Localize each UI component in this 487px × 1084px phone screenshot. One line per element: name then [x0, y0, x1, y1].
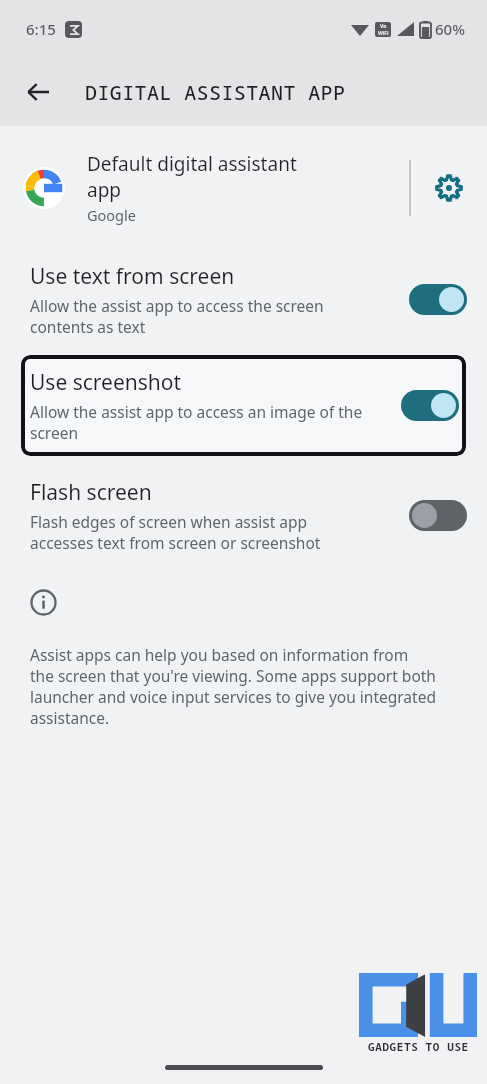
button[interactable]: Flash screen	[0, 474, 487, 557]
staticText: Allow the assist app to access the scree…	[30, 295, 324, 316]
button[interactable]	[401, 390, 459, 421]
staticText: accesses text from screen or screenshot	[30, 532, 321, 553]
staticText: the screen that you're viewing. Some app…	[30, 665, 436, 686]
staticText: GADGETS TO USE	[368, 1039, 469, 1054]
staticText: 60%	[435, 19, 465, 39]
staticText: app	[87, 177, 122, 203]
button[interactable]: Settings	[425, 164, 473, 212]
button[interactable]	[409, 500, 467, 531]
staticText: Google	[87, 205, 136, 225]
button[interactable]: Back	[16, 70, 60, 114]
staticText: Flash screen	[30, 478, 152, 507]
button[interactable]: Use text from screen	[0, 258, 487, 341]
staticText: WiFi	[378, 30, 389, 37]
staticText: screen	[30, 422, 79, 443]
staticText: Assist apps can help you based on inform…	[30, 644, 409, 665]
staticText: Use text from screen	[30, 262, 235, 291]
staticText: contents as text	[30, 316, 146, 337]
staticText: Allow the assist app to access an image …	[30, 401, 363, 422]
button[interactable]	[409, 284, 467, 315]
button[interactable]: Use screenshot	[21, 355, 466, 456]
staticText: Use screenshot	[30, 368, 182, 397]
staticText: Vo	[380, 23, 387, 30]
staticText: DIGITAL ASSISTANT APP	[85, 79, 346, 106]
staticText: launcher and voice input services to giv…	[30, 686, 436, 707]
button[interactable]: Default digital assistant	[0, 140, 487, 236]
staticText: Flash edges of screen when assist app	[30, 511, 308, 532]
staticText: assistance.	[30, 707, 110, 728]
staticText: Default digital assistant	[87, 151, 297, 177]
staticText: 6:15	[26, 19, 56, 39]
